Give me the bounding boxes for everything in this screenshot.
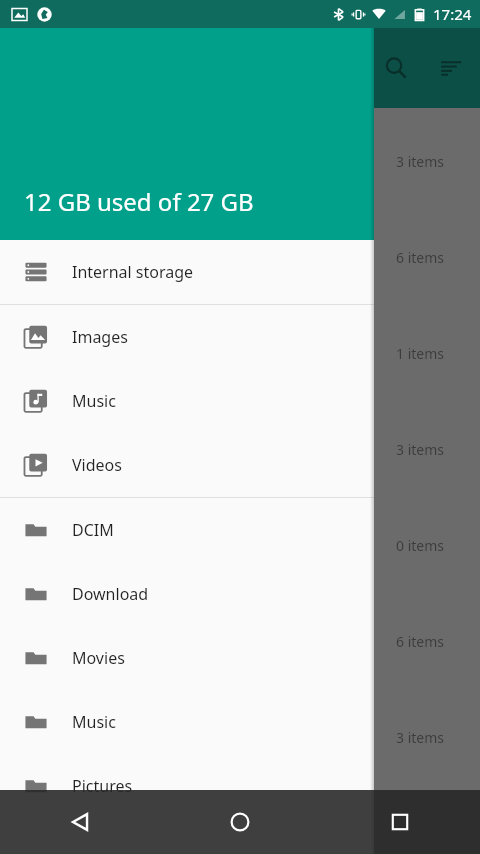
button[interactable]: Videos: [0, 433, 374, 497]
button[interactable]: Home: [160, 790, 320, 854]
button[interactable]: Back: [0, 790, 160, 854]
staticText: 1 items: [396, 344, 445, 363]
button[interactable]: Movies: [0, 626, 374, 690]
staticText: Music: [72, 390, 116, 412]
staticText: 3 items: [396, 728, 445, 747]
button[interactable]: Internal storage: [0, 240, 374, 304]
staticText: 6 items: [396, 248, 445, 267]
staticText: DCIM: [72, 519, 114, 541]
staticText: Music: [72, 711, 116, 733]
button[interactable]: Music: [0, 690, 374, 754]
staticText: Pictures: [72, 775, 133, 797]
button[interactable]: Images: [0, 305, 374, 369]
button[interactable]: Search: [368, 40, 424, 96]
staticText: 6 items: [396, 632, 445, 651]
staticText: 17:24: [433, 4, 472, 24]
staticText: Download: [72, 583, 149, 605]
staticText: Internal storage: [72, 261, 194, 283]
staticText: 12 GB used of 27 GB: [24, 185, 254, 218]
button[interactable]: Sort: [424, 40, 480, 96]
button[interactable]: DCIM: [0, 498, 374, 562]
staticText: Images: [72, 326, 128, 348]
button[interactable]: Music: [0, 369, 374, 433]
button[interactable]: Recents: [320, 790, 480, 854]
button[interactable]: Download: [0, 562, 374, 626]
staticText: 0 items: [396, 536, 445, 555]
staticText: Movies: [72, 647, 125, 669]
button[interactable]: Pictures: [0, 754, 374, 818]
staticText: 3 items: [396, 440, 445, 459]
button[interactable]: 12 GB used of 27 GB: [0, 0, 374, 240]
staticText: 3 items: [396, 152, 445, 171]
staticText: Videos: [72, 454, 122, 476]
